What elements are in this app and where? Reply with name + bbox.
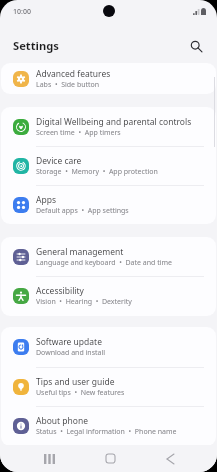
button[interactable]: Home	[94, 445, 126, 472]
staticText: Download and install	[36, 348, 106, 358]
button[interactable]: Digital Wellbeing and parental controls	[1, 107, 216, 146]
button[interactable]: Device care	[1, 146, 216, 185]
staticText: About phone	[36, 415, 89, 427]
staticText: Vision • Hearing • Dexterity	[36, 297, 132, 307]
staticText: Software update	[36, 336, 102, 348]
staticText: Digital Wellbeing and parental controls	[36, 116, 192, 128]
staticText: Tips and user guide	[36, 376, 115, 388]
button[interactable]: Software update	[1, 327, 216, 367]
staticText: Language and keyboard • Date and time	[36, 258, 173, 268]
staticText: Status • Legal information • Phone name	[36, 427, 177, 437]
button[interactable]: Tips and user guide	[1, 367, 216, 407]
staticText: Accessibility	[36, 285, 84, 297]
staticText: Settings	[13, 38, 59, 53]
staticText: Labs • Side button	[36, 80, 100, 90]
button[interactable]: Search	[183, 33, 209, 59]
staticText: Advanced features	[36, 68, 111, 80]
staticText: Default apps • App settings	[36, 206, 129, 216]
button[interactable]: Recents	[33, 445, 65, 472]
button[interactable]: General management	[1, 237, 216, 276]
button[interactable]: About phone	[1, 406, 216, 446]
staticText: 10:00	[13, 7, 31, 17]
staticText: Storage • Memory • App protection	[36, 167, 158, 177]
staticText: Apps	[36, 194, 56, 206]
button[interactable]: Back	[154, 445, 186, 472]
staticText: General management	[36, 246, 124, 258]
staticText: Screen time • App timers	[36, 128, 121, 138]
staticText: Device care	[36, 155, 82, 167]
button[interactable]: Advanced features	[1, 63, 216, 94]
staticText: Useful tips • New features	[36, 388, 125, 398]
button[interactable]: Accessibility	[1, 276, 216, 315]
button[interactable]: Apps	[1, 185, 216, 224]
